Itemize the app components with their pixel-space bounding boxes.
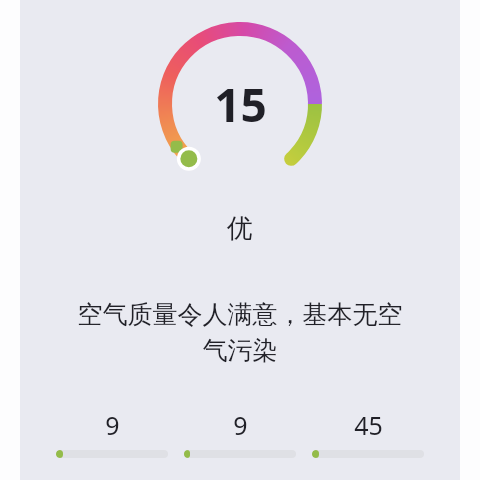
button[interactable]: 9 [184,408,296,458]
staticText: 优 [227,212,253,245]
button[interactable]: 9 [56,408,168,458]
staticText: 45 [354,408,383,442]
staticText: 9 [105,408,120,442]
button[interactable]: 空气质量指数 15 优 [158,22,322,186]
staticText: 空气质量令人满意，基本无空气污染 [75,299,405,366]
staticText: 9 [233,408,248,442]
staticText: 15 [214,73,267,136]
button[interactable]: 45 [312,408,424,458]
